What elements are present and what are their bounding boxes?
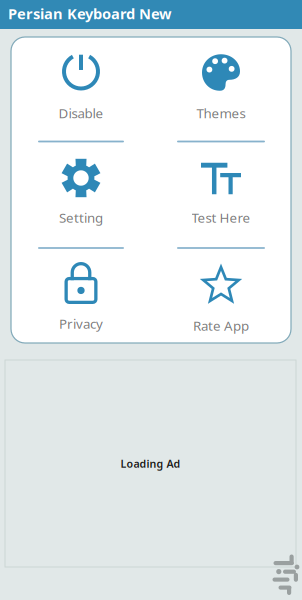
staticText: Loading Ad bbox=[120, 456, 180, 471]
button[interactable]: Disable bbox=[11, 37, 151, 141]
staticText: Privacy bbox=[59, 315, 103, 332]
staticText: Themes bbox=[196, 104, 245, 122]
staticText: Setting bbox=[59, 209, 103, 226]
button[interactable]: Rate App bbox=[151, 248, 291, 343]
button[interactable]: Test Here bbox=[151, 141, 291, 248]
staticText: Test Here bbox=[191, 209, 250, 226]
staticText: Disable bbox=[58, 104, 103, 122]
button[interactable]: Privacy bbox=[11, 248, 151, 343]
staticText: Persian Keyboard New bbox=[8, 4, 172, 23]
button[interactable]: Themes bbox=[151, 37, 291, 141]
button[interactable]: Setting bbox=[11, 141, 151, 248]
staticText: Rate App bbox=[193, 317, 249, 334]
